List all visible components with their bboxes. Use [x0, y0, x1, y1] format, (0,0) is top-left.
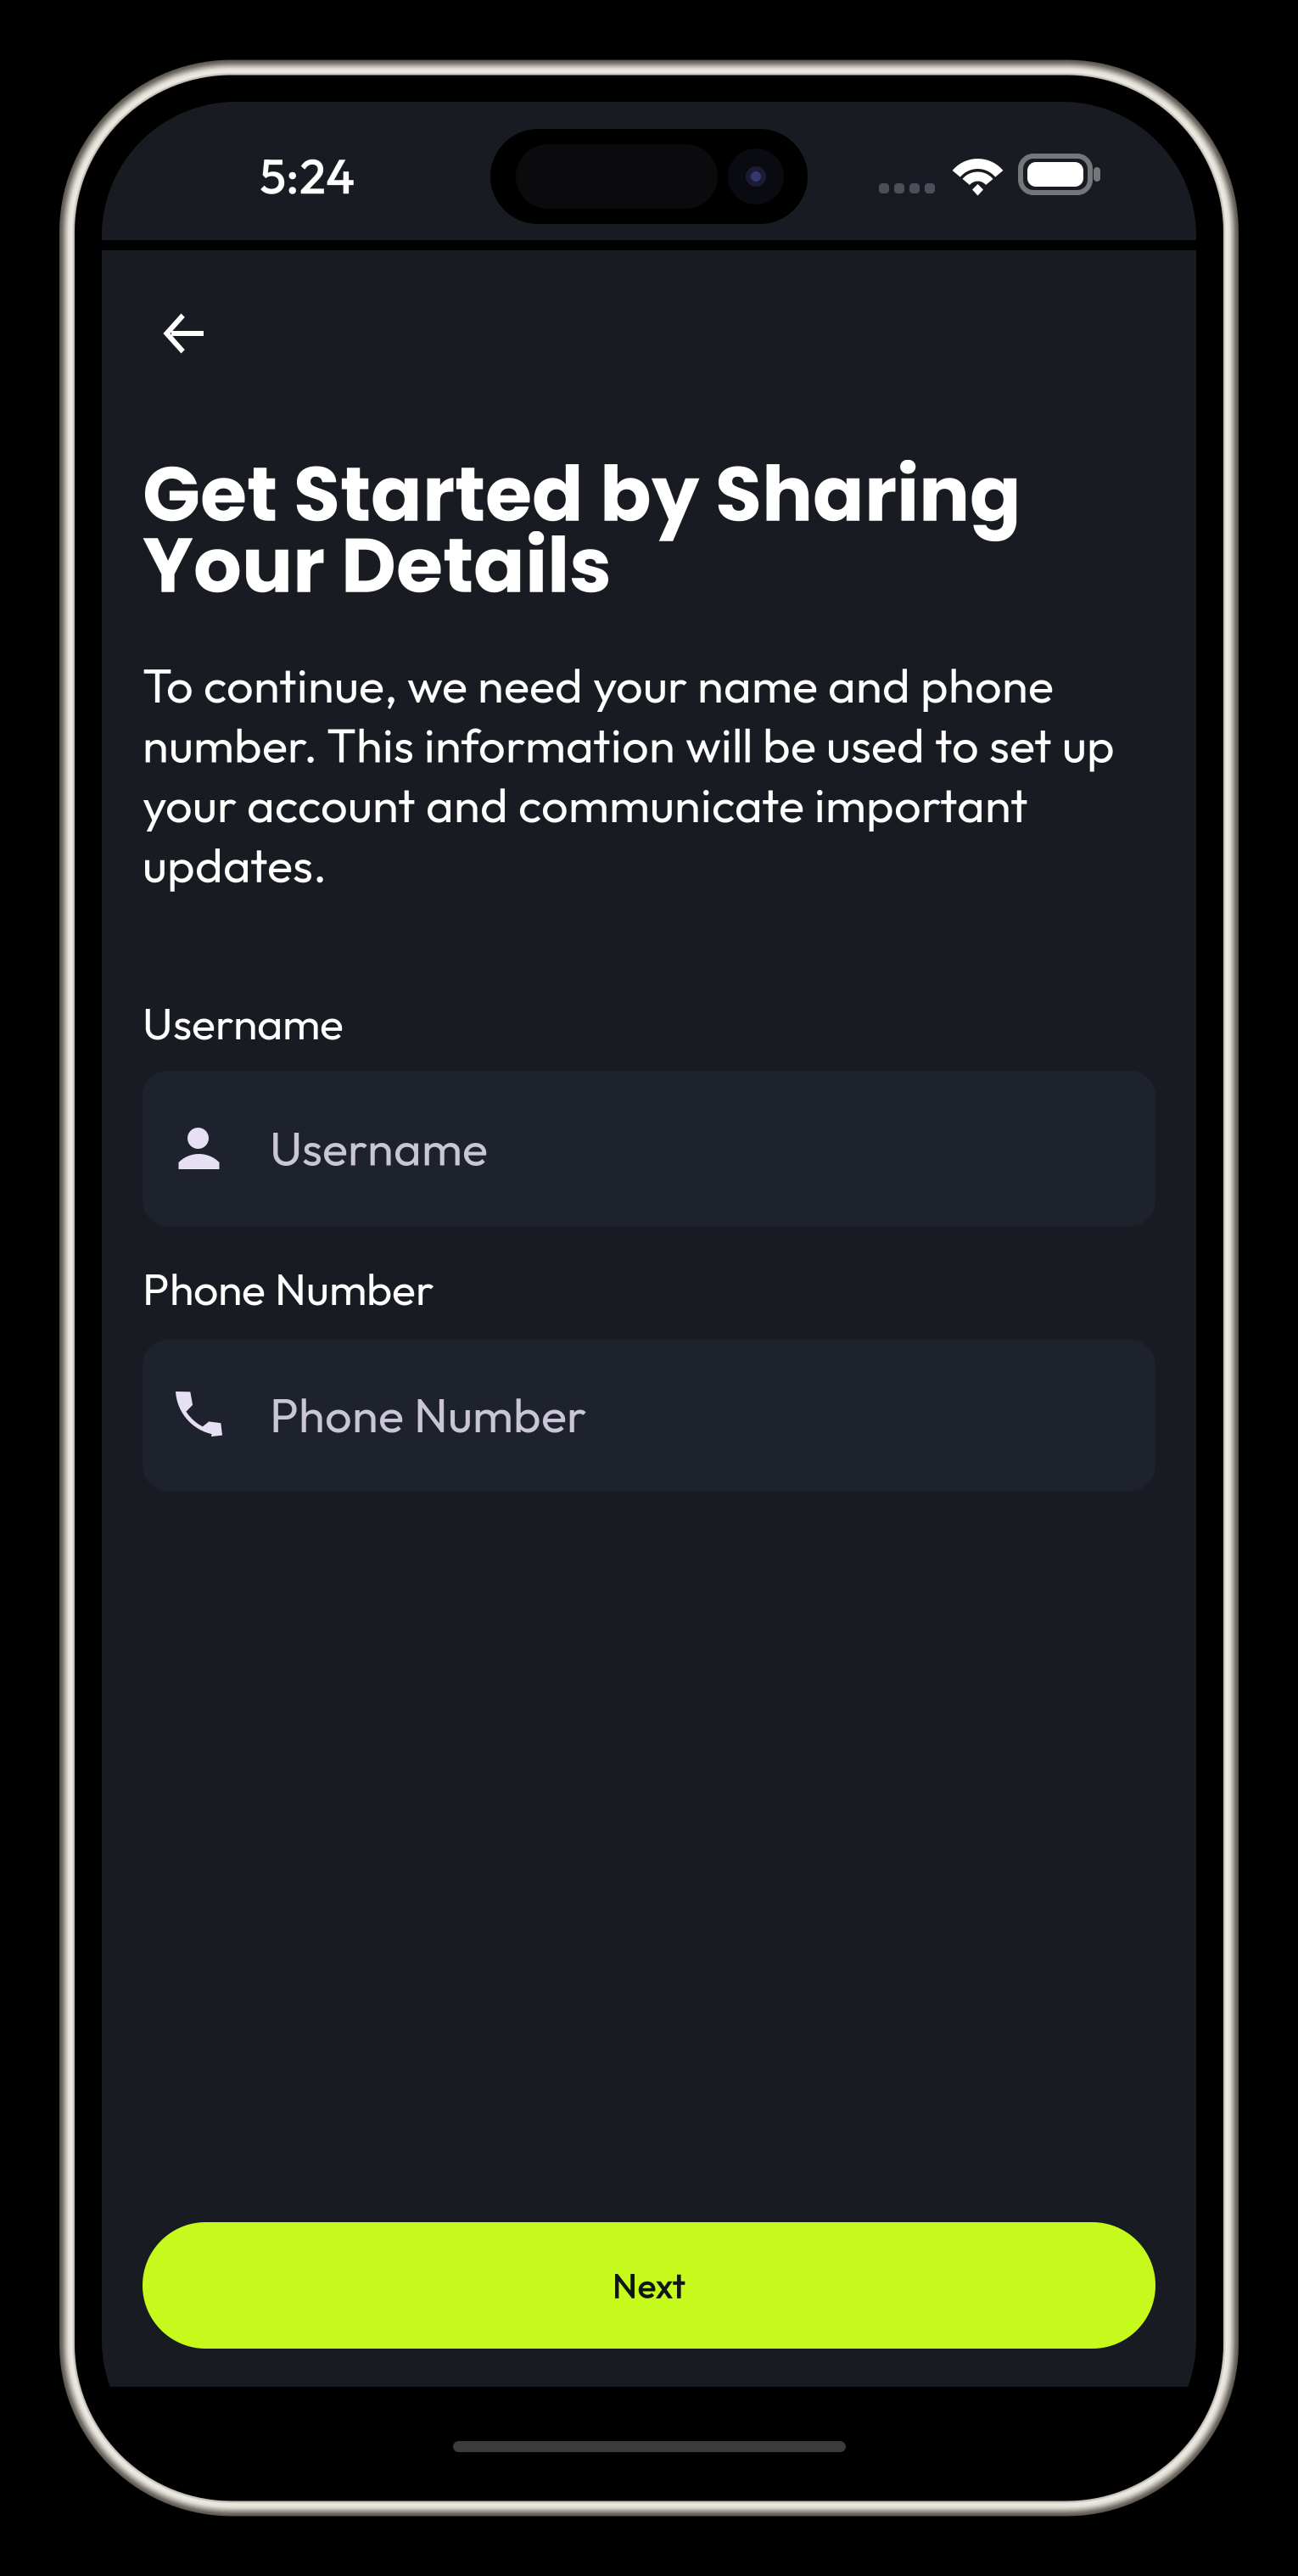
- staticText: To continue, we need your name and phone…: [143, 655, 1115, 894]
- staticText: Username: [143, 995, 344, 1051]
- staticText: Phone Number: [270, 1385, 586, 1445]
- button[interactable]: Phone Number: [143, 1340, 1155, 1491]
- staticText: 5:24: [260, 145, 355, 206]
- button[interactable]: Username: [143, 1071, 1155, 1226]
- button[interactable]: Back: [143, 293, 224, 374]
- staticText: Phone Number: [143, 1261, 434, 1316]
- button[interactable]: Next: [143, 2222, 1155, 2349]
- staticText: Username: [270, 1118, 488, 1178]
- staticText: Get Started by Sharing Your Details: [143, 441, 1021, 619]
- staticText: Next: [612, 2263, 686, 2308]
